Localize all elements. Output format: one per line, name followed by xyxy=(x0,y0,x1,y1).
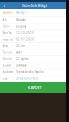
staticText: Detay Görüntüle xyxy=(16,77,39,80)
staticText: 24 da xyxy=(16,44,24,48)
button[interactable]: Durum xyxy=(0,49,69,56)
button[interactable]: Kayıt xyxy=(0,75,69,82)
button[interactable]: Tarla/Bölge xyxy=(0,9,69,17)
staticText: Buğday xyxy=(16,25,26,28)
staticText: 02.07.2020 xyxy=(16,38,34,41)
staticText: Kayıt xyxy=(2,77,8,80)
staticText: Damlama xyxy=(16,64,26,67)
staticText: Durum xyxy=(2,51,11,54)
staticText: Mustafa xyxy=(16,18,25,22)
staticText: Açıklama xyxy=(2,70,12,74)
staticText: Ürün xyxy=(2,25,9,28)
button[interactable]: Ad xyxy=(0,17,69,23)
staticText: 22 kg/da xyxy=(16,57,28,61)
staticText: Alan xyxy=(2,44,8,48)
staticText: 12.10.2019 xyxy=(16,31,34,35)
staticText: Aktif xyxy=(16,51,22,54)
button[interactable]: KAYDET xyxy=(0,82,69,93)
staticText: Tohum xyxy=(2,57,11,61)
button[interactable]: Alan xyxy=(0,43,69,49)
staticText: Merkez / 1 xyxy=(16,11,29,15)
staticText: KAYDET xyxy=(27,85,41,90)
staticText: Toprak Analizi Yapıldı xyxy=(16,70,44,74)
staticText: Ad xyxy=(2,18,6,22)
button[interactable]: Sulama xyxy=(0,62,69,69)
button[interactable]: Menu xyxy=(61,2,67,9)
button[interactable]: Açıklama xyxy=(0,69,69,75)
button[interactable]: Hasat Tar. xyxy=(0,36,69,43)
staticText: ‹ xyxy=(3,2,5,9)
staticText: Sulama xyxy=(2,64,10,67)
button[interactable]: Ürün xyxy=(0,23,69,30)
button[interactable]: Tohum xyxy=(0,56,69,62)
staticText: Ekim Tar. xyxy=(2,31,12,35)
staticText: Günlük Bilgi xyxy=(22,3,47,8)
staticText: Tarla/Bölge xyxy=(2,11,16,15)
staticText: Hasat Tar. xyxy=(2,38,13,41)
button[interactable]: Back xyxy=(1,2,7,9)
button[interactable]: Ekim Tar. xyxy=(0,30,69,36)
